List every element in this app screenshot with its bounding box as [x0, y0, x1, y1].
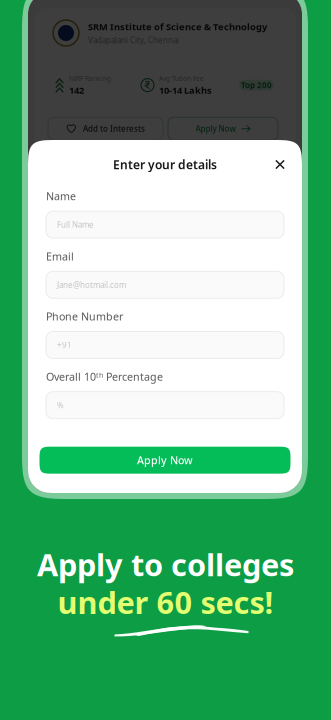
staticText: +91: [57, 340, 72, 350]
staticText: Apply Now: [195, 123, 235, 134]
staticText: Email: [46, 249, 74, 263]
button[interactable]: Apply Now: [39, 447, 290, 474]
staticText: 10-14 Lakhs: [159, 84, 212, 96]
staticText: Add to Interests: [83, 123, 145, 134]
staticText: Apply to colleges: [37, 544, 294, 585]
button[interactable]: Close: [269, 157, 291, 172]
staticText: Jane@hotmail.com: [57, 279, 126, 290]
staticText: Avg Tution Fee: [159, 74, 204, 83]
staticText: Name: [46, 189, 76, 203]
staticText: Overall 10ᵗʰ Percentage: [46, 369, 163, 384]
button[interactable]: Apply Now: [168, 117, 278, 140]
staticText: Phone Number: [46, 309, 123, 323]
staticText: Enter your details: [113, 156, 217, 172]
staticText: under 60 secs!: [57, 582, 273, 622]
staticText: 142: [69, 84, 84, 96]
button[interactable]: Full Name: [46, 211, 284, 238]
staticText: Full Name: [57, 219, 94, 230]
staticText: NIRF Ranking: [69, 74, 111, 83]
staticText: Top 200: [241, 80, 272, 90]
staticText: SRM Institute of Science & Technology: [88, 20, 267, 33]
button[interactable]: Jane@hotmail.com: [46, 271, 284, 298]
staticText: %: [57, 400, 64, 410]
staticText: Apply Now: [137, 453, 193, 467]
staticText: Vadapalani City, Chennai: [88, 35, 179, 45]
button[interactable]: Add to Interests: [48, 117, 163, 140]
